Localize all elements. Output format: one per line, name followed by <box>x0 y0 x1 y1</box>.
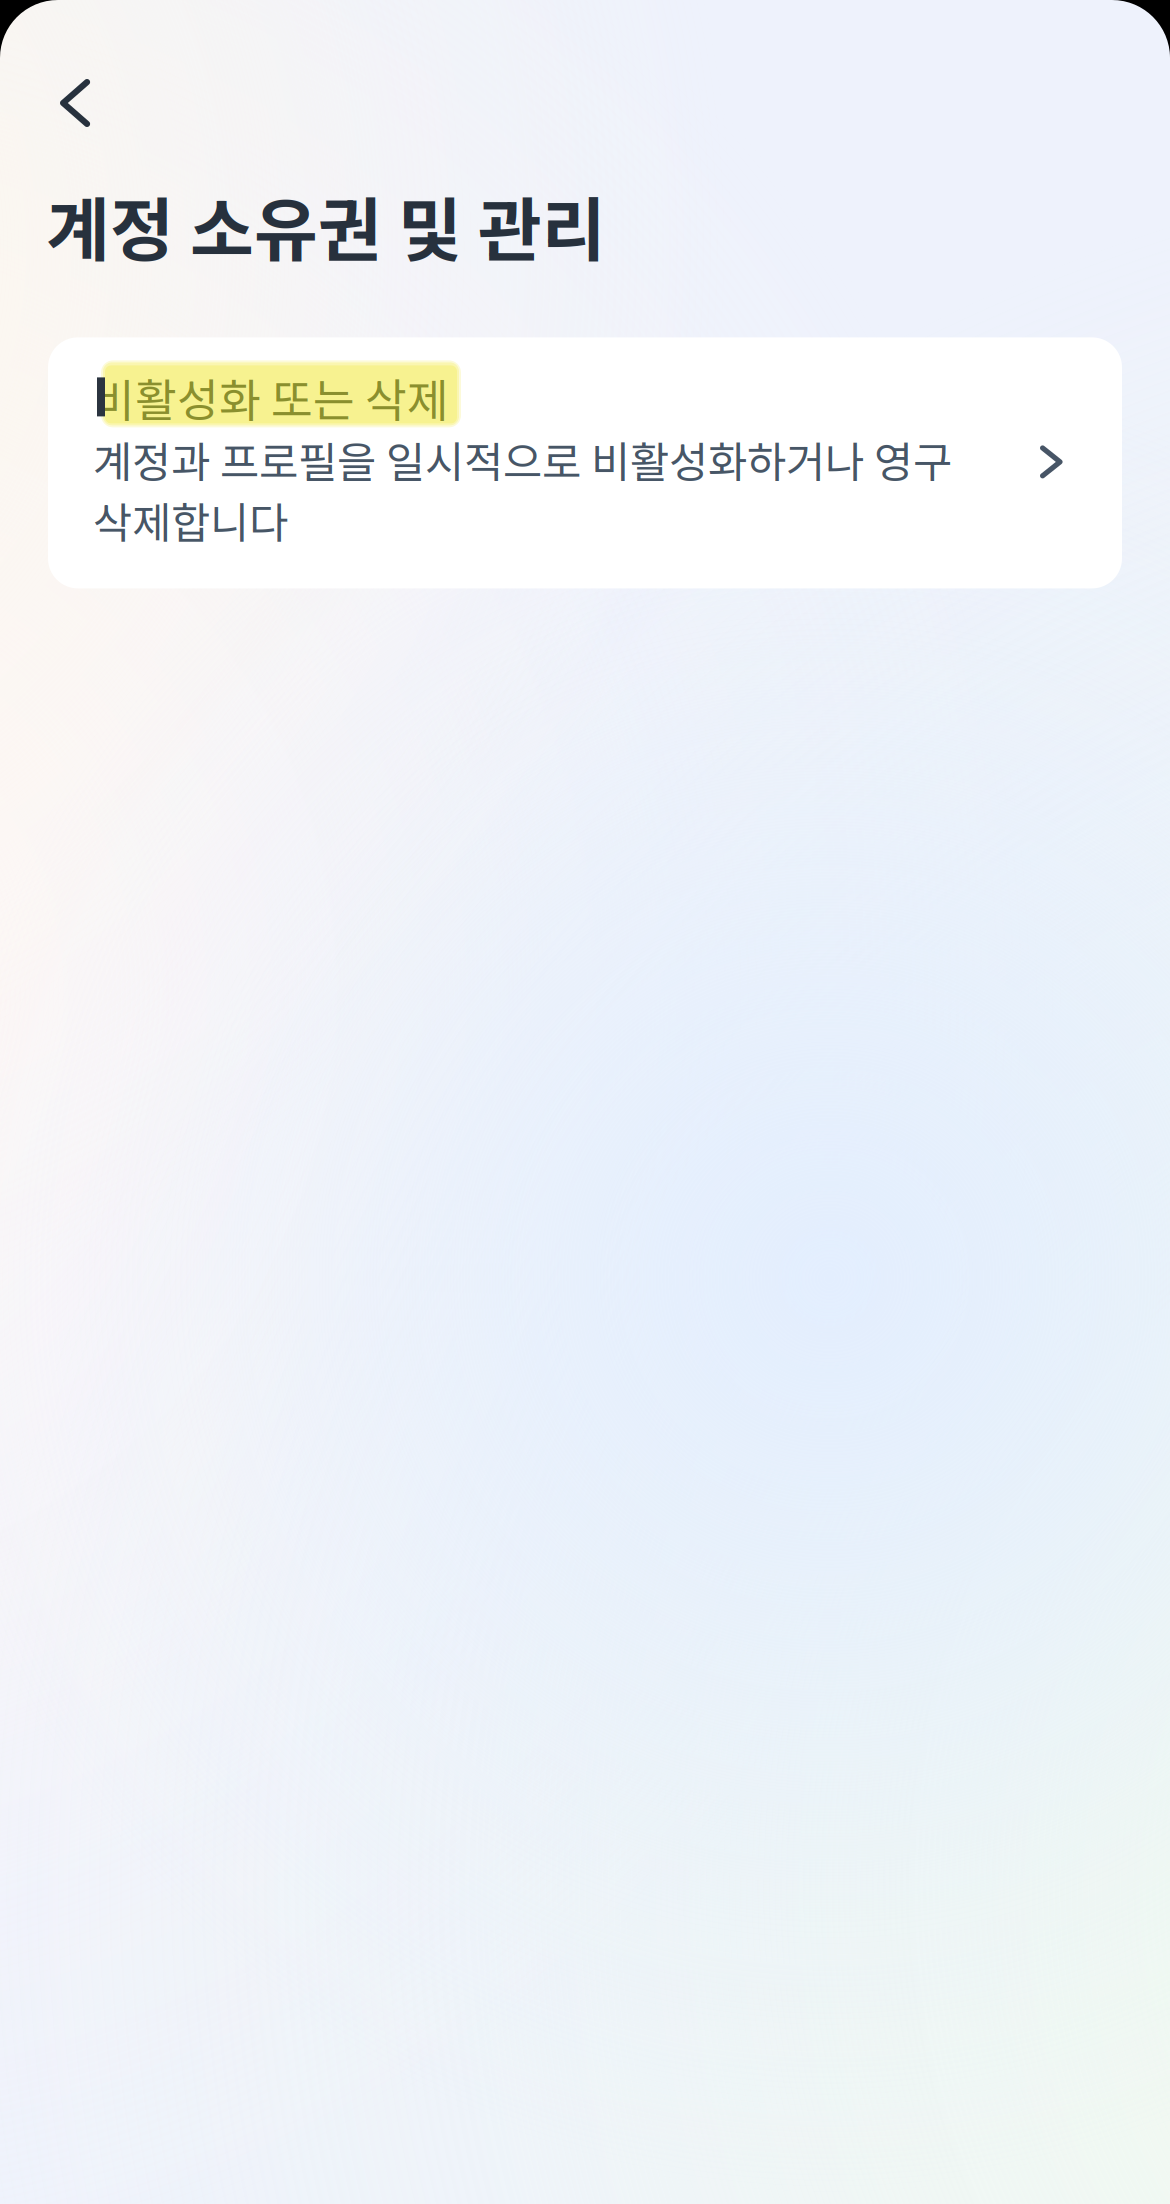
staticText: 계정과 프로필을 일시적으로 비활성화하거나 영구 삭제합니다 <box>93 428 952 551</box>
button[interactable]: Back <box>0 0 116 147</box>
staticText: 비활성화 또는 삭제 <box>93 364 449 430</box>
button[interactable]: 비활성화 또는 삭제 <box>48 337 1122 588</box>
staticText: 계정 소유권 및 관리 <box>46 175 606 275</box>
